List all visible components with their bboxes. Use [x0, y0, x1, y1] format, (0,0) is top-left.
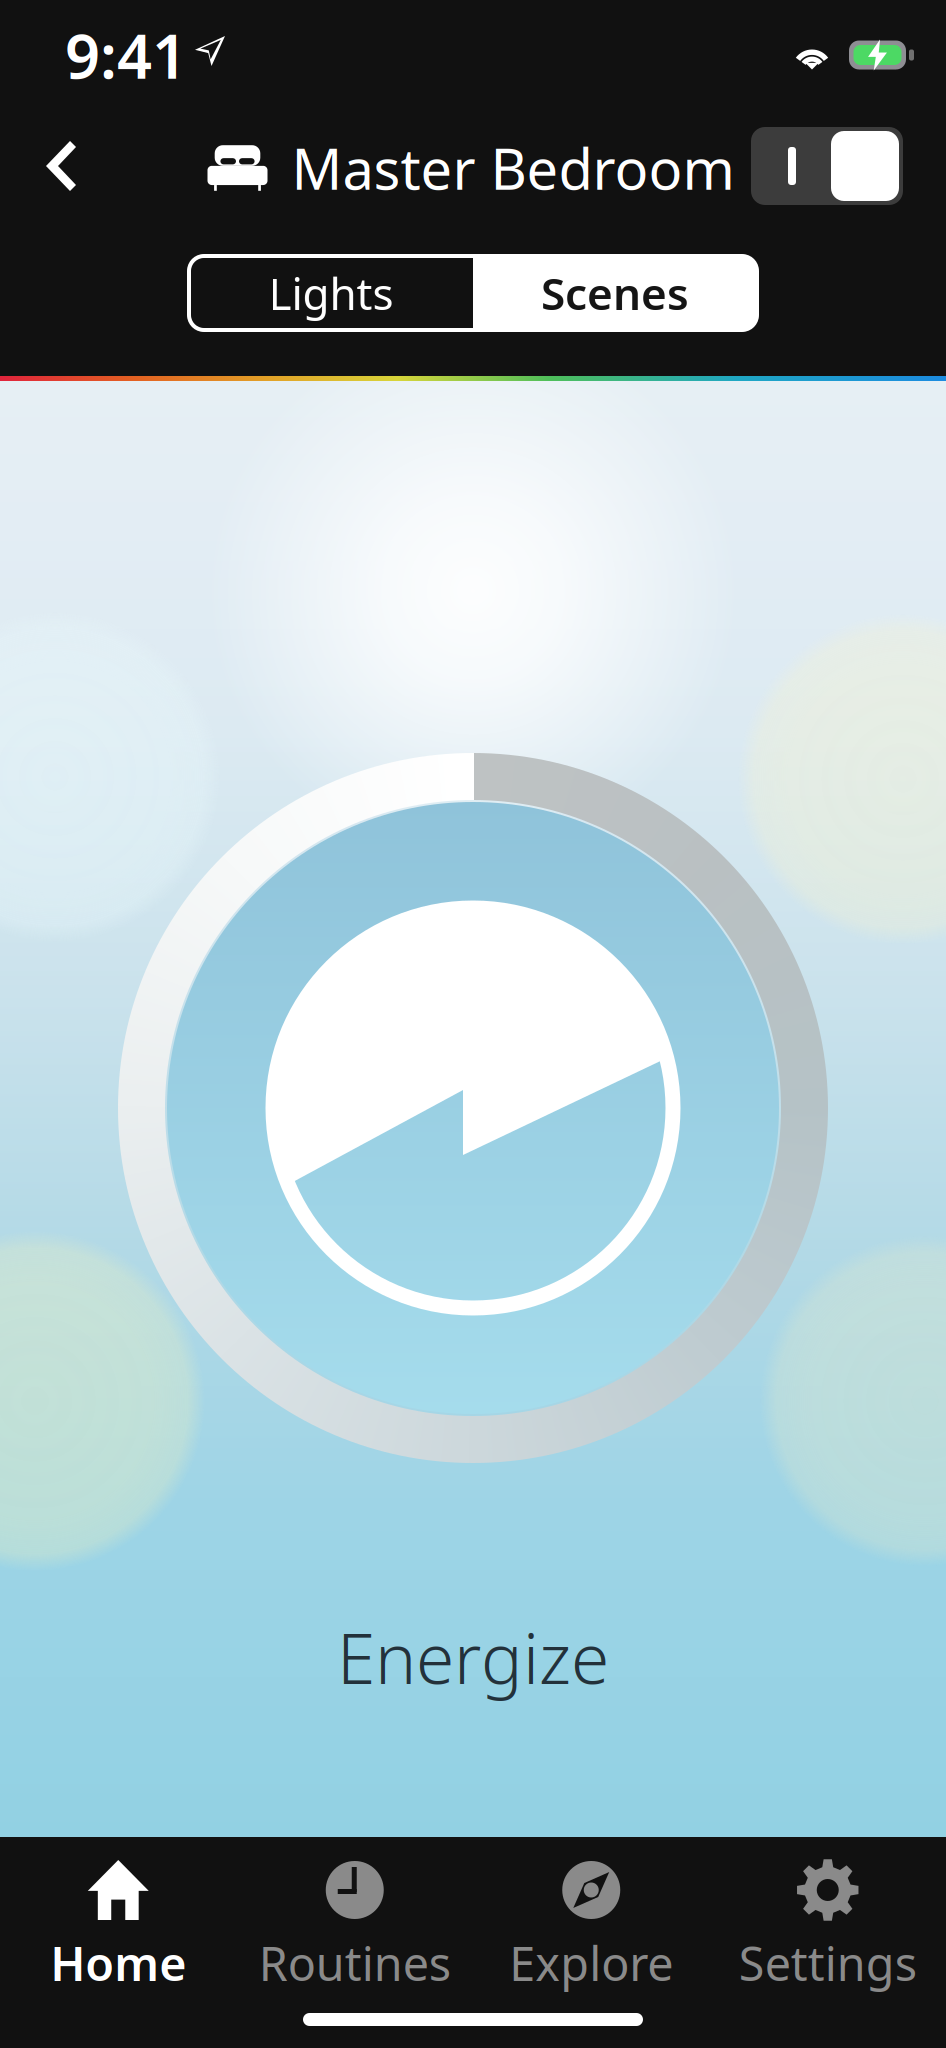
staticText: Energize: [337, 1611, 609, 1703]
staticText: Lights: [268, 264, 393, 322]
staticText: Master Bedroom: [291, 131, 734, 205]
staticText: Routines: [259, 1932, 451, 1994]
staticText: Scenes: [541, 264, 689, 322]
button[interactable]: Settings: [709, 1857, 946, 1996]
staticText: 9:41: [65, 14, 187, 96]
button[interactable]: Scenes: [473, 256, 757, 330]
button[interactable]: Explore: [473, 1857, 709, 1996]
button[interactable]: Home: [0, 1857, 236, 1996]
staticText: Explore: [509, 1932, 673, 1994]
staticText: Settings: [739, 1932, 917, 1994]
button[interactable]: Routines: [236, 1857, 473, 1996]
button[interactable]: Room power toggle: [751, 127, 903, 205]
staticText: Home: [50, 1932, 186, 1994]
button[interactable]: Back: [16, 115, 106, 217]
button[interactable]: Lights: [189, 256, 473, 330]
